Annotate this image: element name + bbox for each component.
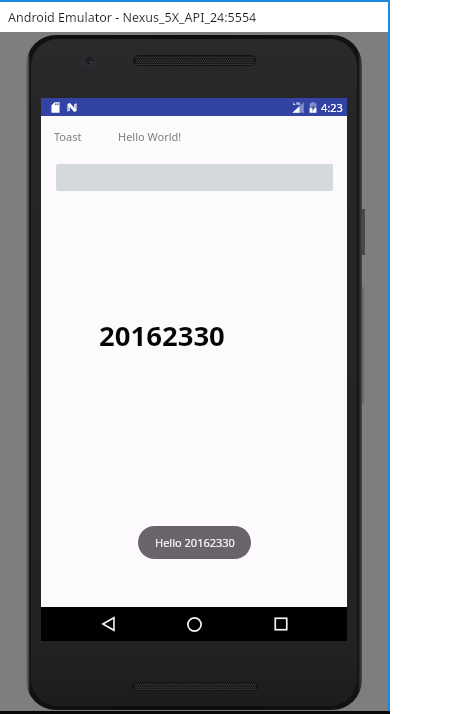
button[interactable]: Hello 20162330 (138, 526, 251, 559)
staticText: 4:23 (321, 100, 343, 115)
button[interactable]: Back (91, 607, 126, 641)
staticText: Hello 20162330 (155, 535, 235, 550)
staticText: Hello World! (118, 129, 182, 144)
staticText: 20162330 (99, 317, 225, 354)
button[interactable]: Recent apps (263, 607, 298, 641)
button[interactable]: Home (177, 607, 212, 641)
staticText: Android Emulator - Nexus_5X_API_24:5554 (8, 9, 257, 26)
button[interactable]: Toast (54, 129, 82, 144)
